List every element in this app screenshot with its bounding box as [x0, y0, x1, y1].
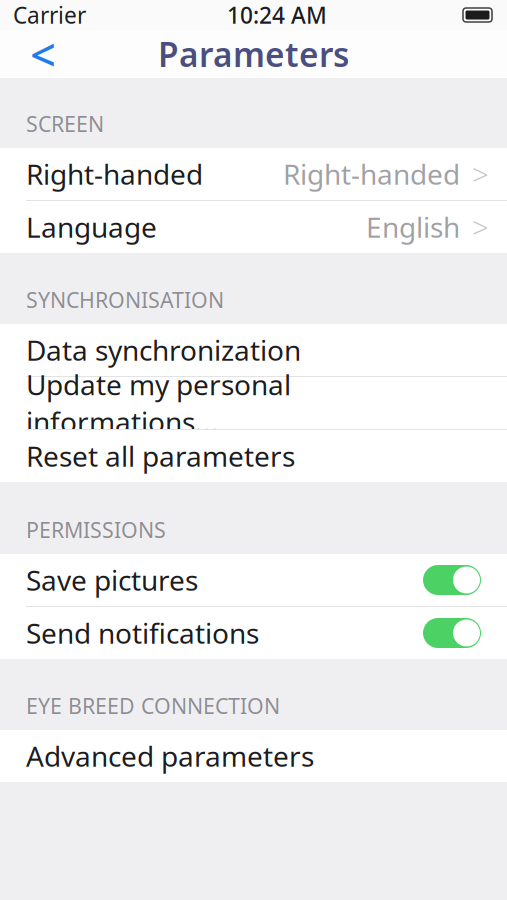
- button[interactable]: Update my personal informations...: [0, 377, 507, 429]
- staticText: <: [30, 24, 56, 84]
- staticText: Language: [26, 208, 157, 246]
- staticText: Carrier: [13, 0, 86, 30]
- button[interactable]: Right-handed: [0, 148, 507, 200]
- button[interactable]: Language: [0, 201, 507, 253]
- staticText: Data synchronization: [26, 331, 301, 369]
- staticText: SCREEN: [26, 110, 104, 138]
- staticText: Save pictures: [26, 561, 198, 599]
- button[interactable]: Save pictures: [0, 554, 507, 606]
- staticText: EYE BREED CONNECTION: [26, 692, 280, 720]
- staticText: Right-handed: [26, 155, 203, 193]
- staticText: Send notifications: [26, 614, 259, 652]
- staticText: 10:24 AM: [227, 0, 327, 30]
- staticText: Advanced parameters: [26, 737, 314, 775]
- staticText: PERMISSIONS: [26, 516, 166, 544]
- button[interactable]: Back: [20, 31, 66, 77]
- staticText: Right-handed: [283, 155, 460, 193]
- staticText: Reset all parameters: [26, 437, 295, 475]
- staticText: Update my personal informations...: [26, 366, 291, 440]
- button[interactable]: Send notifications: [0, 607, 507, 659]
- staticText: English: [366, 208, 460, 246]
- button[interactable]: Reset all parameters: [0, 430, 507, 482]
- staticText: Parameters: [158, 32, 349, 76]
- staticText: SYNCHRONISATION: [26, 286, 224, 314]
- button[interactable]: Advanced parameters: [0, 730, 507, 782]
- staticText: >: [472, 154, 489, 193]
- button[interactable]: Data synchronization: [0, 324, 507, 376]
- staticText: >: [472, 207, 489, 246]
